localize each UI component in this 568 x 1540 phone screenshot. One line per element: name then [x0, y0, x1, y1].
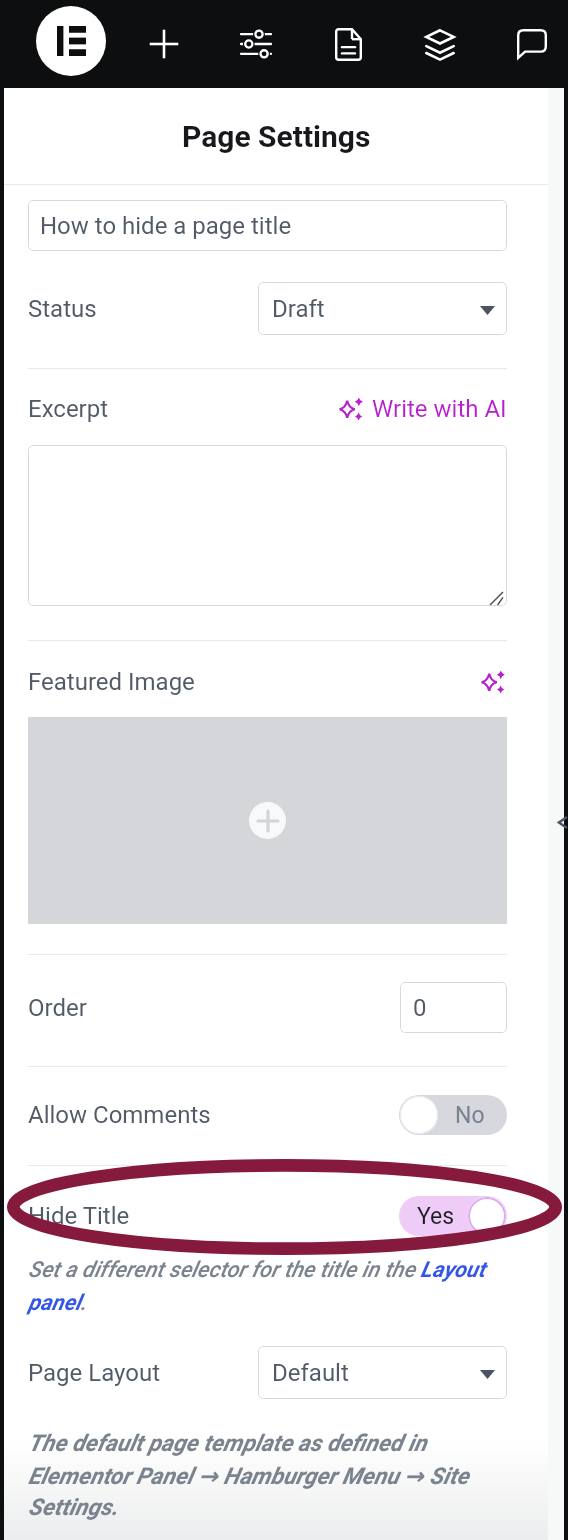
staticText: No: [455, 1102, 485, 1129]
staticText: Yes: [417, 1203, 455, 1230]
button[interactable]: Feedback: [506, 18, 558, 70]
staticText: Allow Comments: [28, 1101, 211, 1129]
button[interactable]: 0: [400, 982, 507, 1033]
button[interactable]: Collapse panel: [553, 807, 568, 833]
button[interactable]: Add element: [138, 18, 190, 70]
staticText: Featured Image: [28, 668, 195, 696]
staticText: Hide Title: [28, 1202, 130, 1230]
button[interactable]: Enabled: [399, 1196, 507, 1236]
staticText: The default page template as defined in …: [28, 1430, 507, 1521]
staticText: Page Settings: [182, 119, 371, 154]
button[interactable]: How to hide a page title: [28, 200, 507, 251]
staticText: Page Layout: [28, 1359, 160, 1387]
staticText: Set a different selector for the title i…: [28, 1257, 507, 1315]
button[interactable]: Generate image with AI: [481, 669, 507, 695]
staticText: Status: [28, 295, 97, 323]
button[interactable]: Default: [258, 1346, 507, 1399]
button[interactable]: Settings: [230, 18, 282, 70]
button[interactable]: Write with AI: [339, 395, 507, 423]
button[interactable]: Draft: [258, 282, 507, 335]
button[interactable]: Disabled: [399, 1095, 507, 1135]
staticText: Excerpt: [28, 395, 109, 423]
staticText: Write with AI: [372, 395, 507, 423]
staticText: Order: [28, 994, 87, 1022]
staticText: Default: [272, 1359, 349, 1387]
button[interactable]: Excerpt: [28, 445, 507, 606]
staticText: How to hide a page title: [40, 212, 292, 240]
button[interactable]: Navigator: [414, 18, 466, 70]
button[interactable]: Page settings: [322, 18, 374, 70]
button[interactable]: Add featured image: [28, 717, 507, 924]
button[interactable]: Elementor menu: [36, 6, 106, 76]
staticText: 0: [413, 994, 427, 1022]
staticText: Draft: [272, 295, 325, 323]
